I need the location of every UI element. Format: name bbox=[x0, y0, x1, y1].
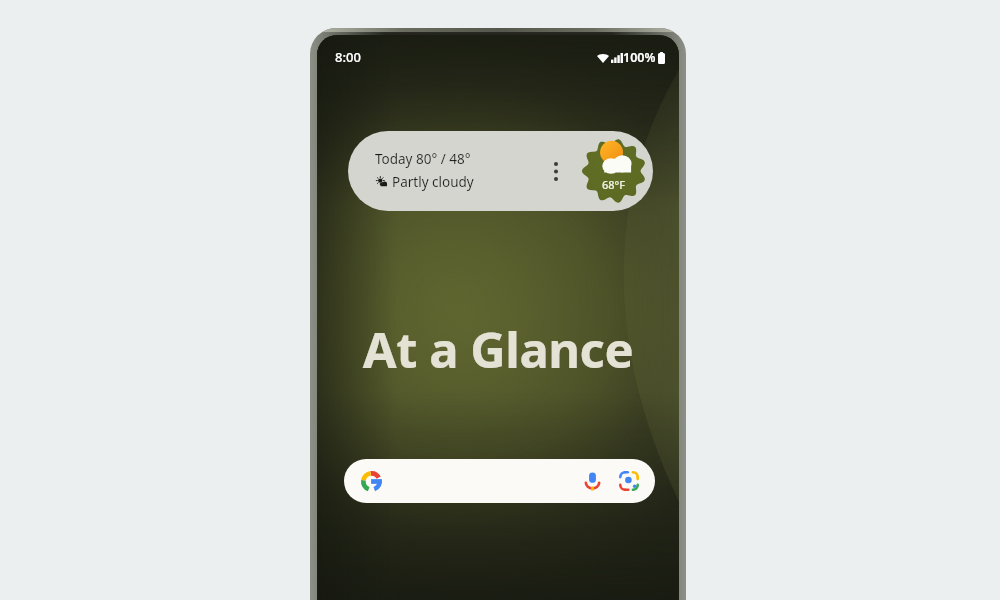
button[interactable]: Google Lens bbox=[612, 464, 646, 498]
button[interactable]: Weather, 68 degrees Fahrenheit, partly c… bbox=[581, 138, 647, 204]
staticText: 100% bbox=[623, 49, 656, 66]
button[interactable]: Voice search bbox=[344, 459, 655, 503]
staticText: 8:00 bbox=[335, 48, 361, 66]
button[interactable]: Voice search bbox=[575, 464, 609, 498]
staticText: Partly cloudy bbox=[392, 173, 474, 191]
button[interactable]: Today 80° / 48° bbox=[348, 131, 653, 211]
staticText: Today 80° / 48° bbox=[375, 150, 471, 168]
staticText: 68°F bbox=[602, 177, 626, 192]
staticText: At a Glance bbox=[317, 316, 679, 383]
button[interactable]: More options bbox=[545, 154, 567, 188]
